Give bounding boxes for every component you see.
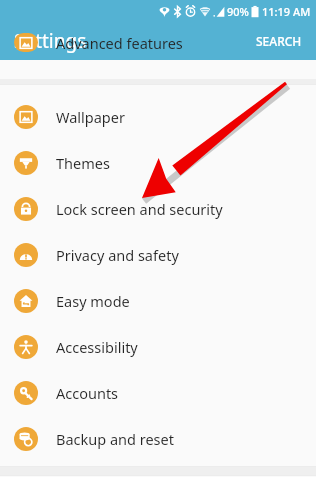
staticText: Privacy and safety [56,245,179,265]
staticText: 90% [227,4,249,19]
staticText: Accessibility [56,337,138,357]
staticText: Advanced features [56,33,183,52]
staticText: Easy mode [56,291,130,311]
button[interactable]: Themes [0,140,316,186]
staticText: Lock screen and security [56,199,223,219]
button[interactable]: SEARCH [242,25,316,57]
button[interactable]: Backup and reset [0,416,316,462]
staticText: 11:19 AM [262,4,311,19]
button[interactable]: Easy mode [0,278,316,324]
staticText: Backup and reset [56,429,174,449]
button[interactable]: Wallpaper [0,94,316,140]
staticText: Accounts [56,383,119,403]
staticText: Wallpaper [56,107,125,127]
staticText: Themes [56,153,110,173]
button[interactable]: Privacy and safety [0,232,316,278]
button[interactable]: Advanced features [0,33,316,52]
button[interactable]: Accessibility [0,324,316,370]
button[interactable]: Lock screen and security [0,186,316,232]
staticText: Settings [14,28,87,54]
staticText: SEARCH [256,33,302,49]
button[interactable]: Accounts [0,370,316,416]
